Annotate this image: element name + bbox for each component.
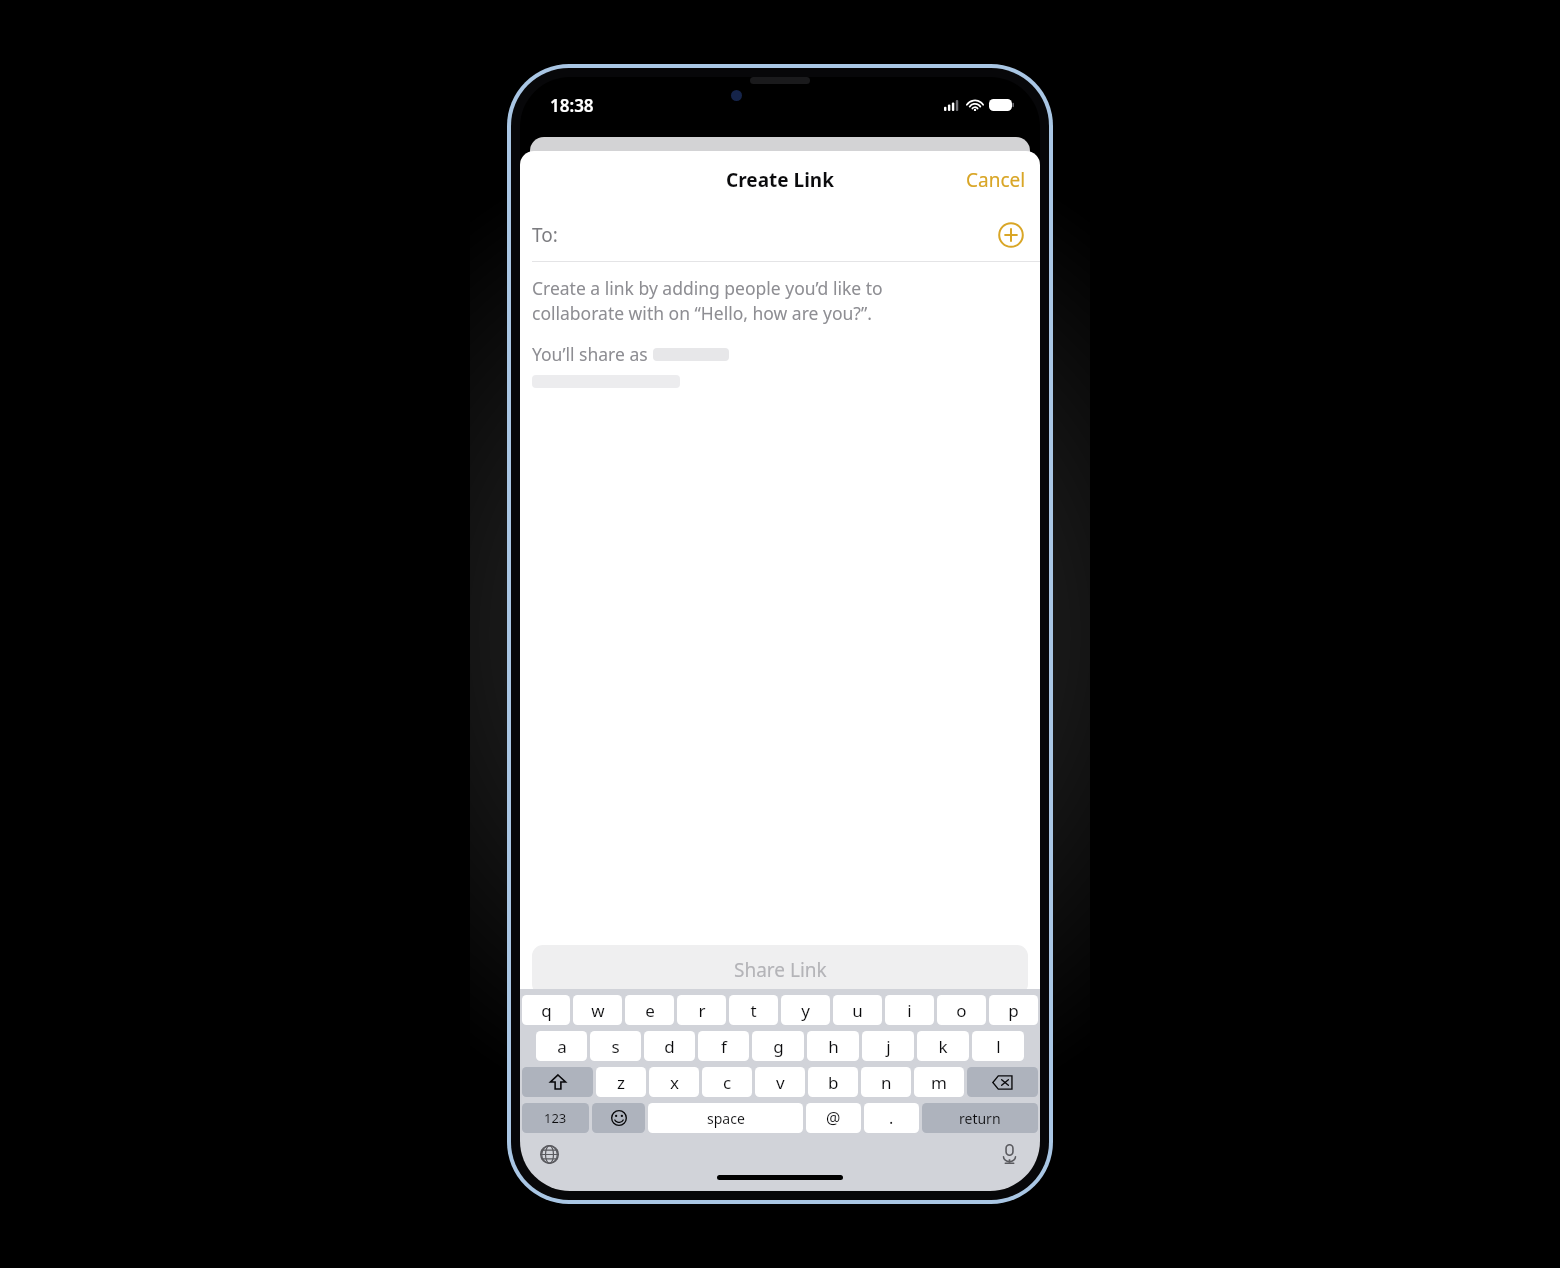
staticText: t xyxy=(750,999,757,1022)
button[interactable]: m xyxy=(914,1067,964,1097)
staticText: 123 xyxy=(544,1109,567,1127)
button[interactable]: Backspace xyxy=(967,1067,1038,1097)
staticText: To: xyxy=(532,222,558,248)
staticText: x xyxy=(670,1071,679,1094)
button[interactable]: d xyxy=(644,1031,695,1061)
button[interactable]: s xyxy=(590,1031,641,1061)
staticText: e xyxy=(645,999,655,1022)
button[interactable]: Add person xyxy=(994,218,1028,252)
staticText: f xyxy=(721,1035,727,1058)
staticText: g xyxy=(773,1035,784,1058)
button[interactable]: t xyxy=(729,995,778,1025)
staticText: d xyxy=(664,1035,675,1058)
staticText: space xyxy=(707,1109,745,1128)
button[interactable]: 123 xyxy=(522,1103,589,1133)
button[interactable]: v xyxy=(755,1067,805,1097)
staticText: u xyxy=(852,999,863,1022)
button[interactable]: a xyxy=(536,1031,587,1061)
button[interactable]: Shift xyxy=(522,1067,593,1097)
staticText: Create a link by adding people you’d lik… xyxy=(532,276,883,326)
button[interactable]: n xyxy=(861,1067,911,1097)
button[interactable]: return xyxy=(922,1103,1038,1133)
button[interactable]: Change keyboard xyxy=(534,1139,564,1169)
staticText: Cancel xyxy=(966,167,1026,193)
button[interactable]: p xyxy=(989,995,1038,1025)
staticText: Share Link xyxy=(734,957,827,983)
staticText: h xyxy=(828,1035,839,1058)
button[interactable]: f xyxy=(698,1031,749,1061)
staticText: q xyxy=(541,999,552,1022)
button[interactable]: Cancel xyxy=(952,159,1040,201)
staticText: 18:38 xyxy=(550,94,594,117)
staticText: You’ll share as xyxy=(532,342,653,366)
button[interactable]: u xyxy=(833,995,882,1025)
button[interactable]: q xyxy=(522,995,570,1025)
staticText: m xyxy=(931,1071,947,1094)
button[interactable]: l xyxy=(972,1031,1024,1061)
button[interactable]: x xyxy=(649,1067,699,1097)
button[interactable]: o xyxy=(937,995,986,1025)
staticText: n xyxy=(881,1071,892,1094)
button[interactable]: y xyxy=(781,995,830,1025)
button[interactable]: r xyxy=(677,995,726,1025)
staticText: v xyxy=(776,1071,785,1094)
button[interactable]: space xyxy=(648,1103,803,1133)
staticText: s xyxy=(611,1035,620,1058)
staticText: z xyxy=(617,1071,625,1094)
staticText: k xyxy=(938,1035,948,1058)
staticText: w xyxy=(591,999,605,1022)
staticText: j xyxy=(886,1035,891,1058)
button[interactable]: g xyxy=(752,1031,804,1061)
staticText: a xyxy=(557,1035,567,1058)
button[interactable]: . xyxy=(864,1103,919,1133)
staticText: c xyxy=(723,1071,732,1094)
button[interactable]: @ xyxy=(806,1103,861,1133)
button[interactable]: k xyxy=(917,1031,969,1061)
staticText: y xyxy=(801,999,810,1022)
staticText: . xyxy=(889,1107,894,1129)
button[interactable]: Dictate xyxy=(994,1139,1024,1169)
staticText: r xyxy=(698,999,706,1022)
staticText: i xyxy=(907,999,912,1022)
button[interactable]: i xyxy=(885,995,934,1025)
button[interactable]: c xyxy=(702,1067,752,1097)
button[interactable]: Emoji xyxy=(592,1103,645,1133)
button[interactable]: j xyxy=(862,1031,914,1061)
staticText: l xyxy=(996,1035,1001,1058)
button[interactable]: w xyxy=(573,995,622,1025)
staticText: @ xyxy=(826,1107,841,1129)
button[interactable]: e xyxy=(625,995,674,1025)
staticText: o xyxy=(956,999,967,1022)
staticText: p xyxy=(1008,999,1019,1022)
staticText: return xyxy=(959,1109,1001,1128)
button[interactable]: b xyxy=(808,1067,858,1097)
button[interactable]: z xyxy=(596,1067,646,1097)
button[interactable]: h xyxy=(807,1031,859,1061)
staticText: b xyxy=(828,1071,839,1094)
staticText: Create Link xyxy=(726,167,834,193)
button[interactable]: Share Link xyxy=(532,945,1028,995)
